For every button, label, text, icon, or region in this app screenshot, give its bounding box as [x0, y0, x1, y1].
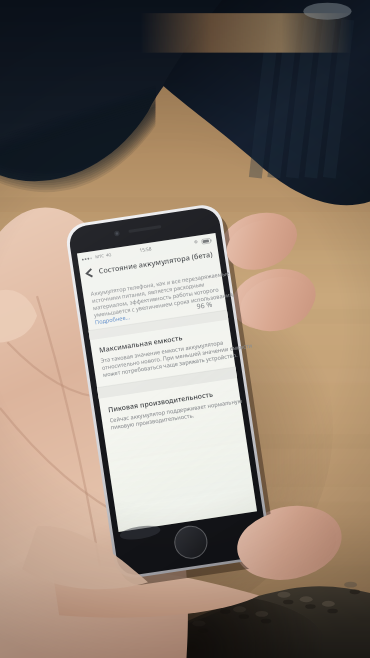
- button[interactable]: Photo of a hand holding an iPhone showin…: [0, 0, 370, 658]
